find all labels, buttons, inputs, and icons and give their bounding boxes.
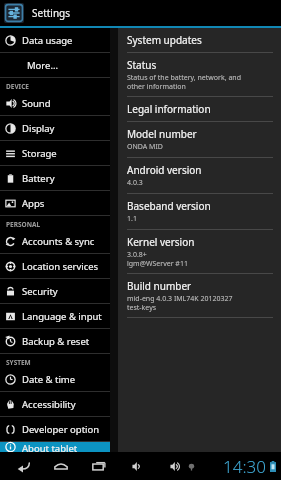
staticText: 1.1 (127, 214, 137, 224)
button[interactable]: Date & time (0, 367, 110, 391)
button[interactable]: Volume down (126, 454, 148, 478)
button[interactable]: Accessibility (0, 392, 110, 416)
button[interactable]: Home (48, 454, 74, 478)
button[interactable]: More... (0, 53, 110, 77)
button[interactable]: Legal information (118, 97, 281, 121)
button[interactable]: Volume up (164, 454, 186, 478)
staticText: Location services (22, 260, 99, 273)
staticText: 4.0.3 (127, 178, 143, 188)
button[interactable]: Developer option (0, 417, 110, 441)
button[interactable]: Baseband version (118, 194, 281, 229)
staticText: 14:30 (223, 455, 266, 478)
button[interactable]: Back (10, 454, 36, 478)
button[interactable]: Display (0, 116, 110, 140)
staticText: Baseband version (127, 199, 211, 213)
button[interactable]: Kernel version (118, 230, 281, 273)
staticText: DEVICE (6, 82, 29, 91)
staticText: Accounts & sync (22, 235, 95, 248)
staticText: Model number (127, 127, 197, 141)
staticText: Date & time (22, 373, 76, 386)
staticText: ONDA MID (127, 142, 163, 152)
button[interactable]: Sound (0, 91, 110, 115)
staticText: Status (127, 58, 157, 72)
staticText: Language & input (22, 310, 102, 323)
staticText: Android version (127, 163, 202, 177)
staticText: Settings (32, 6, 71, 20)
staticText: Data usage (22, 34, 73, 47)
button[interactable]: Storage (0, 141, 110, 165)
button[interactable]: Location services (0, 254, 110, 278)
staticText: Storage (22, 147, 57, 160)
staticText: Sound (22, 97, 51, 110)
button[interactable]: About tablet (0, 442, 110, 452)
button[interactable]: Language & input (0, 304, 110, 328)
staticText: Accessibility (22, 398, 76, 411)
button[interactable]: Data usage (0, 28, 110, 52)
button[interactable]: Backup & reset (0, 329, 110, 353)
button[interactable]: Settings (0, 0, 281, 26)
staticText: Status of the battery, network, and othe… (127, 73, 241, 91)
button[interactable]: Build number (118, 274, 281, 317)
button[interactable]: Android version (118, 158, 281, 193)
staticText: Apps (22, 197, 45, 210)
button[interactable]: Apps (0, 191, 110, 215)
button[interactable]: System updates (118, 28, 281, 52)
staticText: Kernel version (127, 235, 195, 249)
staticText: mid-eng 4.0.3 IML74K 20120327 test-keys (127, 294, 233, 312)
staticText: Developer option (22, 423, 100, 436)
staticText: Battery (22, 172, 55, 185)
button[interactable]: Status (118, 53, 281, 96)
button[interactable]: Accounts & sync (0, 229, 110, 253)
staticText: Build number (127, 279, 192, 293)
button[interactable]: Battery (0, 166, 110, 190)
staticText: 3.0.8+ lgm@WServer #11 (127, 250, 188, 268)
staticText: SYSTEM (6, 358, 31, 367)
button[interactable]: Security (0, 279, 110, 303)
staticText: System updates (127, 33, 202, 47)
staticText: Security (22, 285, 58, 298)
staticText: Display (22, 122, 55, 135)
staticText: Legal information (127, 102, 211, 116)
staticText: PERSONAL (6, 220, 41, 229)
staticText: About tablet (22, 442, 78, 452)
staticText: Backup & reset (22, 335, 90, 348)
button[interactable]: Model number (118, 122, 281, 157)
staticText: More... (27, 59, 59, 72)
button[interactable]: Recent apps (86, 454, 112, 478)
